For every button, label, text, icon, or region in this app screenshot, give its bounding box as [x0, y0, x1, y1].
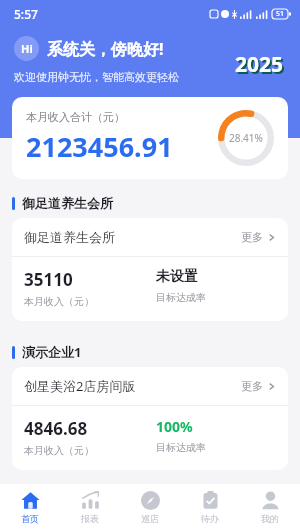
button[interactable]: 巡店	[120, 484, 180, 530]
button[interactable]: 报表	[60, 484, 120, 530]
staticText: 2025	[237, 52, 286, 81]
staticText: 4846.68	[24, 417, 88, 440]
button[interactable]: 御足道养生会所	[12, 218, 288, 256]
button[interactable]: 创星美浴2店房间版	[12, 367, 288, 405]
staticText: 更多	[241, 230, 263, 244]
button[interactable]: 我的	[240, 484, 300, 530]
staticText: 巡店	[141, 513, 159, 524]
staticText: Hi	[21, 41, 33, 56]
staticText: 更多	[241, 379, 263, 393]
staticText: 35110	[24, 268, 73, 291]
staticText: 欢迎使用钟无忧，智能高效更轻松	[14, 70, 179, 84]
staticText: 首页	[21, 513, 39, 524]
staticText: 御足道养生会所	[24, 229, 241, 245]
staticText: 未设置	[156, 268, 198, 286]
staticText: 系统关，傍晚好!	[47, 38, 164, 60]
staticText: 51	[276, 9, 285, 19]
button[interactable]: 首页	[0, 484, 60, 530]
staticText: 目标达成率	[156, 291, 206, 304]
staticText: 待办	[201, 513, 219, 524]
staticText: 目标达成率	[156, 441, 206, 454]
staticText: 本月收入（元）	[24, 295, 94, 308]
staticText: 28.41%	[229, 131, 263, 145]
staticText: 100%	[156, 417, 193, 436]
staticText: 2025	[235, 50, 284, 79]
staticText: 我的	[261, 513, 279, 524]
staticText: 本月收入合计（元）	[26, 110, 125, 124]
staticText: 御足道养生会所	[22, 195, 113, 211]
staticText: 2123456.91	[26, 128, 173, 165]
button[interactable]: 待办	[180, 484, 240, 530]
staticText: 本月收入（元）	[24, 444, 94, 457]
staticText: 报表	[81, 513, 99, 524]
staticText: 5:57	[14, 6, 38, 22]
staticText: 创星美浴2店房间版	[24, 377, 241, 395]
staticText: 演示企业1	[22, 343, 82, 361]
button[interactable]: 本月收入合计（元）	[12, 97, 288, 179]
